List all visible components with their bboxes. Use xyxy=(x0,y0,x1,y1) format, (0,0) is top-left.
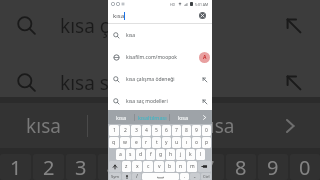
button[interactable]: Clear search xyxy=(197,10,208,21)
button[interactable]: y xyxy=(162,137,171,148)
button[interactable]: x xyxy=(132,161,142,172)
button[interactable]: ı xyxy=(182,137,191,148)
staticText: 4 xyxy=(145,127,148,134)
button[interactable]: 7 xyxy=(172,125,181,136)
staticText: j xyxy=(180,151,182,158)
button[interactable]: 8 xyxy=(182,125,191,136)
staticText: 3 xyxy=(135,127,138,134)
staticText: b xyxy=(168,163,172,170)
staticText: 4 xyxy=(107,154,119,180)
button[interactable]: k xyxy=(186,149,195,160)
button[interactable]: kısa saç modelleri xyxy=(108,93,212,110)
button[interactable]: Voice input xyxy=(122,173,131,180)
staticText: kısa xyxy=(126,32,136,39)
button[interactable]: b xyxy=(165,161,175,172)
staticText: 9 xyxy=(195,127,198,134)
staticText: w xyxy=(123,139,127,146)
button[interactable]: 6 xyxy=(162,125,171,136)
button[interactable]: f xyxy=(146,149,155,160)
staticText: kısa xyxy=(0,113,87,139)
button[interactable]: n xyxy=(176,161,186,172)
button[interactable]: e xyxy=(131,137,141,148)
staticText: kısa xyxy=(113,12,124,20)
staticText: e xyxy=(135,139,138,146)
button[interactable]: o xyxy=(192,137,201,148)
button[interactable]: 5 xyxy=(152,125,161,136)
button[interactable]: / xyxy=(132,173,141,180)
button[interactable]: 4 xyxy=(142,125,151,136)
staticText: A xyxy=(203,54,207,61)
staticText: kısa xyxy=(116,114,127,121)
button[interactable]: kısa xyxy=(108,110,134,124)
button[interactable]: kısa çalışma ödeneği xyxy=(108,71,212,88)
staticText: 0 xyxy=(205,127,208,134)
staticText: z xyxy=(125,163,128,170)
staticText: h xyxy=(169,151,173,158)
staticText: 8 xyxy=(185,127,188,134)
button[interactable]: Shift xyxy=(109,161,121,172)
button[interactable]: ⌄ xyxy=(190,173,200,180)
staticText: k xyxy=(189,151,192,158)
staticText: kısa xyxy=(174,113,260,139)
button[interactable]: u xyxy=(172,137,181,148)
staticText: 5 xyxy=(155,127,158,134)
button[interactable]: j xyxy=(176,149,185,160)
button[interactable]: Backspace xyxy=(198,161,211,172)
button[interactable]: Ctrl xyxy=(201,173,211,180)
button[interactable]: q xyxy=(109,137,119,148)
button[interactable]: a xyxy=(116,149,125,160)
button[interactable]: g xyxy=(156,149,165,160)
staticText: l xyxy=(200,151,202,158)
staticText: kısa xyxy=(178,114,189,121)
button[interactable]: Sym xyxy=(109,173,121,180)
staticText: kısa çalışma ödeneği xyxy=(126,76,175,83)
button[interactable]: p xyxy=(202,137,211,148)
staticText: 1 xyxy=(113,127,116,134)
button[interactable]: l xyxy=(196,149,205,160)
staticText: s xyxy=(129,151,132,158)
button[interactable]: w xyxy=(120,137,130,148)
button[interactable]: s xyxy=(126,149,135,160)
button[interactable]: kısa xyxy=(108,8,212,23)
button[interactable]: 9 xyxy=(192,125,201,136)
staticText: n xyxy=(179,163,183,170)
button[interactable]: z xyxy=(122,161,131,172)
staticText: ⌄ xyxy=(193,174,197,179)
button[interactable]: kısa xyxy=(170,110,197,124)
staticText: 7 xyxy=(203,154,215,180)
staticText: 5 xyxy=(139,154,151,180)
staticText: kisafilm.com/moopok xyxy=(126,54,177,61)
button[interactable]: v xyxy=(154,161,164,172)
button[interactable]: c xyxy=(143,161,153,172)
staticText: kısaltılması xyxy=(138,114,167,121)
button[interactable]: m xyxy=(187,161,197,172)
button[interactable]: kısa xyxy=(108,27,212,44)
staticText: u xyxy=(175,139,179,146)
staticText: . xyxy=(184,173,186,180)
button[interactable]: 0 xyxy=(202,125,211,136)
button[interactable]: h xyxy=(166,149,175,160)
button[interactable]: t xyxy=(152,137,161,148)
staticText: kısa saç modelleri xyxy=(126,98,168,105)
button[interactable]: kısaltılması xyxy=(135,110,169,124)
button[interactable]: kisafilm.com/moopok xyxy=(108,49,212,66)
staticText: v xyxy=(158,163,161,170)
staticText: m xyxy=(190,163,195,170)
staticText: 5:01 AM xyxy=(195,2,209,7)
button[interactable]: 2 xyxy=(120,125,130,136)
staticText: / xyxy=(136,173,138,180)
staticText: p xyxy=(205,139,209,146)
staticText: Sym xyxy=(111,174,119,179)
button[interactable]: 1 xyxy=(109,125,119,136)
button[interactable]: More suggestions xyxy=(197,110,212,124)
button[interactable]: . xyxy=(180,173,189,180)
staticText: d xyxy=(139,151,143,158)
staticText: Ctrl xyxy=(203,174,210,179)
staticText: 9 xyxy=(267,154,279,180)
button[interactable]: Space xyxy=(142,173,179,180)
staticText: 2 xyxy=(43,154,55,180)
button[interactable]: r xyxy=(142,137,151,148)
staticText: 0 xyxy=(299,154,311,180)
button[interactable]: d xyxy=(136,149,145,160)
button[interactable]: 3 xyxy=(131,125,141,136)
